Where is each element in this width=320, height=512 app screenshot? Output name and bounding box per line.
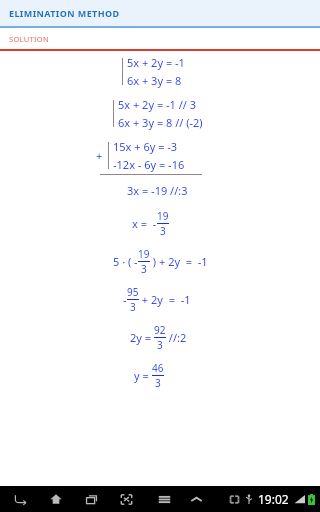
- staticText: 19:02: [258, 491, 289, 507]
- button[interactable]: SOLUTION: [0, 28, 320, 49]
- staticText: + 2y = -1: [139, 292, 191, 307]
- staticText: 3: [160, 224, 166, 238]
- button[interactable]: Recent apps: [80, 486, 102, 512]
- staticText: 19: [138, 247, 150, 261]
- staticText: x = -: [132, 216, 157, 231]
- button[interactable]: Expand: [185, 486, 207, 512]
- staticText: 5 · ( -: [113, 254, 138, 269]
- staticText: -12x - 6y = -16: [113, 157, 185, 172]
- staticText: 3x = -19 //:3: [127, 183, 188, 198]
- staticText: //:2: [166, 330, 187, 345]
- staticText: 3: [157, 338, 163, 352]
- staticText: 19: [157, 209, 169, 223]
- staticText: 92: [154, 323, 166, 337]
- staticText: ) + 2y = -1: [150, 254, 208, 269]
- staticText: SOLUTION: [9, 34, 49, 44]
- button[interactable]: Home: [45, 486, 67, 512]
- staticText: 46: [152, 361, 164, 375]
- staticText: 6x + 3y = 8 // (-2): [118, 115, 203, 130]
- staticText: 2y =: [130, 330, 154, 345]
- staticText: 3: [141, 262, 147, 276]
- staticText: y =: [134, 368, 152, 383]
- staticText: 95: [127, 285, 139, 299]
- button[interactable]: ELIMINATION METHOD: [0, 0, 320, 26]
- button[interactable]: Back: [10, 486, 32, 512]
- staticText: 3: [155, 376, 161, 390]
- staticText: 5x + 2y = -1 // 3: [118, 97, 197, 112]
- button[interactable]: Screenshot: [115, 486, 137, 512]
- staticText: 6x + 3y = 8: [127, 73, 182, 88]
- button[interactable]: Menu: [153, 486, 175, 512]
- staticText: 15x + 6y = -3: [113, 139, 178, 154]
- staticText: 5x + 2y = -1: [127, 55, 185, 70]
- staticText: +: [96, 148, 103, 163]
- staticText: ELIMINATION METHOD: [9, 7, 120, 19]
- staticText: -: [123, 292, 127, 307]
- staticText: 3: [130, 300, 136, 314]
